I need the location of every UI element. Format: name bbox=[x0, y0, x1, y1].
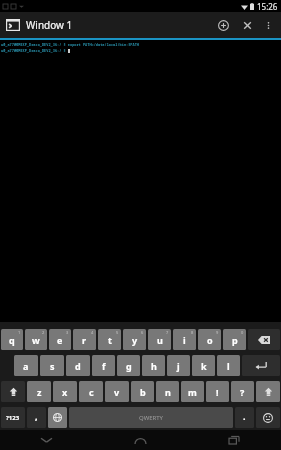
staticText: 9 bbox=[216, 330, 219, 335]
staticText: v bbox=[114, 386, 120, 398]
staticText: b bbox=[140, 386, 146, 398]
staticText: d bbox=[75, 360, 81, 372]
button[interactable]: d bbox=[66, 355, 90, 376]
staticText: i bbox=[183, 334, 186, 346]
staticText: a bbox=[23, 360, 29, 372]
button[interactable]: g bbox=[117, 355, 140, 376]
button[interactable]: u bbox=[148, 329, 171, 350]
button[interactable]: Shift bbox=[256, 381, 280, 402]
staticText: 0 bbox=[241, 330, 244, 335]
staticText: 5 bbox=[116, 330, 119, 335]
button[interactable]: c bbox=[79, 381, 103, 402]
button[interactable]: Close window bbox=[235, 12, 259, 38]
button[interactable]: Backspace bbox=[248, 329, 280, 350]
button[interactable]: i bbox=[173, 329, 196, 350]
staticText: g bbox=[126, 360, 132, 372]
button[interactable]: v bbox=[105, 381, 129, 402]
staticText: t bbox=[108, 334, 112, 346]
button[interactable]: j bbox=[167, 355, 190, 376]
button[interactable]: Hide keyboard bbox=[0, 430, 93, 450]
button[interactable]: o bbox=[198, 329, 221, 350]
staticText: y bbox=[132, 334, 138, 346]
button[interactable]: . bbox=[235, 407, 254, 428]
staticText: m bbox=[188, 386, 197, 398]
button[interactable]: t bbox=[98, 329, 121, 350]
button[interactable]: w bbox=[25, 329, 47, 350]
button[interactable]: ! bbox=[206, 381, 229, 402]
staticText: ? bbox=[240, 386, 245, 398]
button[interactable]: f bbox=[92, 355, 115, 376]
staticText: h bbox=[151, 360, 157, 372]
button[interactable]: r bbox=[73, 329, 96, 350]
button[interactable]: Change language bbox=[48, 407, 67, 428]
staticText: r bbox=[82, 334, 87, 346]
button[interactable]: ? bbox=[231, 381, 254, 402]
button[interactable]: h bbox=[142, 355, 165, 376]
staticText: x bbox=[62, 386, 68, 398]
staticText: k bbox=[201, 360, 207, 372]
button[interactable]: More options bbox=[259, 12, 277, 38]
staticText: 2 bbox=[42, 330, 45, 335]
button[interactable]: p bbox=[223, 329, 246, 350]
staticText: p bbox=[232, 334, 238, 346]
staticText: 7 bbox=[166, 330, 169, 335]
staticText: e bbox=[57, 334, 63, 346]
button[interactable]: z bbox=[27, 381, 51, 402]
button[interactable]: s bbox=[40, 355, 64, 376]
staticText: o bbox=[207, 334, 213, 346]
button[interactable]: x bbox=[53, 381, 77, 402]
button[interactable]: , bbox=[27, 407, 46, 428]
button[interactable]: Shift bbox=[1, 381, 25, 402]
staticText: u bbox=[157, 334, 163, 346]
button[interactable]: m bbox=[181, 381, 204, 402]
staticText: , bbox=[35, 410, 38, 422]
button[interactable]: ?123 bbox=[1, 407, 25, 428]
button[interactable]: y bbox=[123, 329, 146, 350]
staticText: l bbox=[227, 360, 230, 372]
staticText: u0_a770@MEXP_Draco_DEV2_36:/ $ bbox=[1, 48, 68, 53]
staticText: 6 bbox=[141, 330, 144, 335]
staticText: 3 bbox=[66, 330, 69, 335]
staticText: QWERTY bbox=[139, 414, 164, 422]
staticText: 15:26 bbox=[257, 1, 278, 12]
button[interactable]: Home bbox=[93, 430, 187, 450]
button[interactable]: q bbox=[1, 329, 23, 350]
button[interactable]: Terminal bbox=[5, 17, 21, 33]
button[interactable]: Space bbox=[69, 407, 233, 428]
staticText: ?123 bbox=[6, 414, 20, 422]
staticText: w bbox=[32, 334, 40, 346]
staticText: s bbox=[50, 360, 55, 372]
button[interactable]: Emoji bbox=[256, 407, 280, 428]
button[interactable]: Window 1 bbox=[26, 12, 211, 38]
staticText: n bbox=[165, 386, 171, 398]
staticText: f bbox=[102, 360, 106, 372]
staticText: u0_a770@MEXP_Draco_DEV2_36:/ $ export PA… bbox=[1, 42, 139, 47]
button[interactable]: e bbox=[49, 329, 71, 350]
button[interactable]: Recent apps bbox=[187, 430, 281, 450]
staticText: Window 1 bbox=[26, 18, 73, 32]
staticText: q bbox=[9, 334, 15, 346]
staticText: j bbox=[177, 360, 180, 372]
staticText: 8 bbox=[191, 330, 194, 335]
staticText: ! bbox=[216, 386, 219, 398]
staticText: z bbox=[37, 386, 42, 398]
button[interactable]: b bbox=[131, 381, 154, 402]
button[interactable]: a bbox=[14, 355, 38, 376]
button[interactable]: k bbox=[192, 355, 215, 376]
button[interactable]: New window bbox=[211, 12, 235, 38]
staticText: c bbox=[89, 386, 94, 398]
button[interactable]: Enter bbox=[242, 355, 280, 376]
staticText: 4 bbox=[91, 330, 94, 335]
staticText: 1 bbox=[18, 330, 21, 335]
staticText: . bbox=[243, 410, 246, 422]
button[interactable]: n bbox=[156, 381, 179, 402]
button[interactable]: l bbox=[217, 355, 240, 376]
